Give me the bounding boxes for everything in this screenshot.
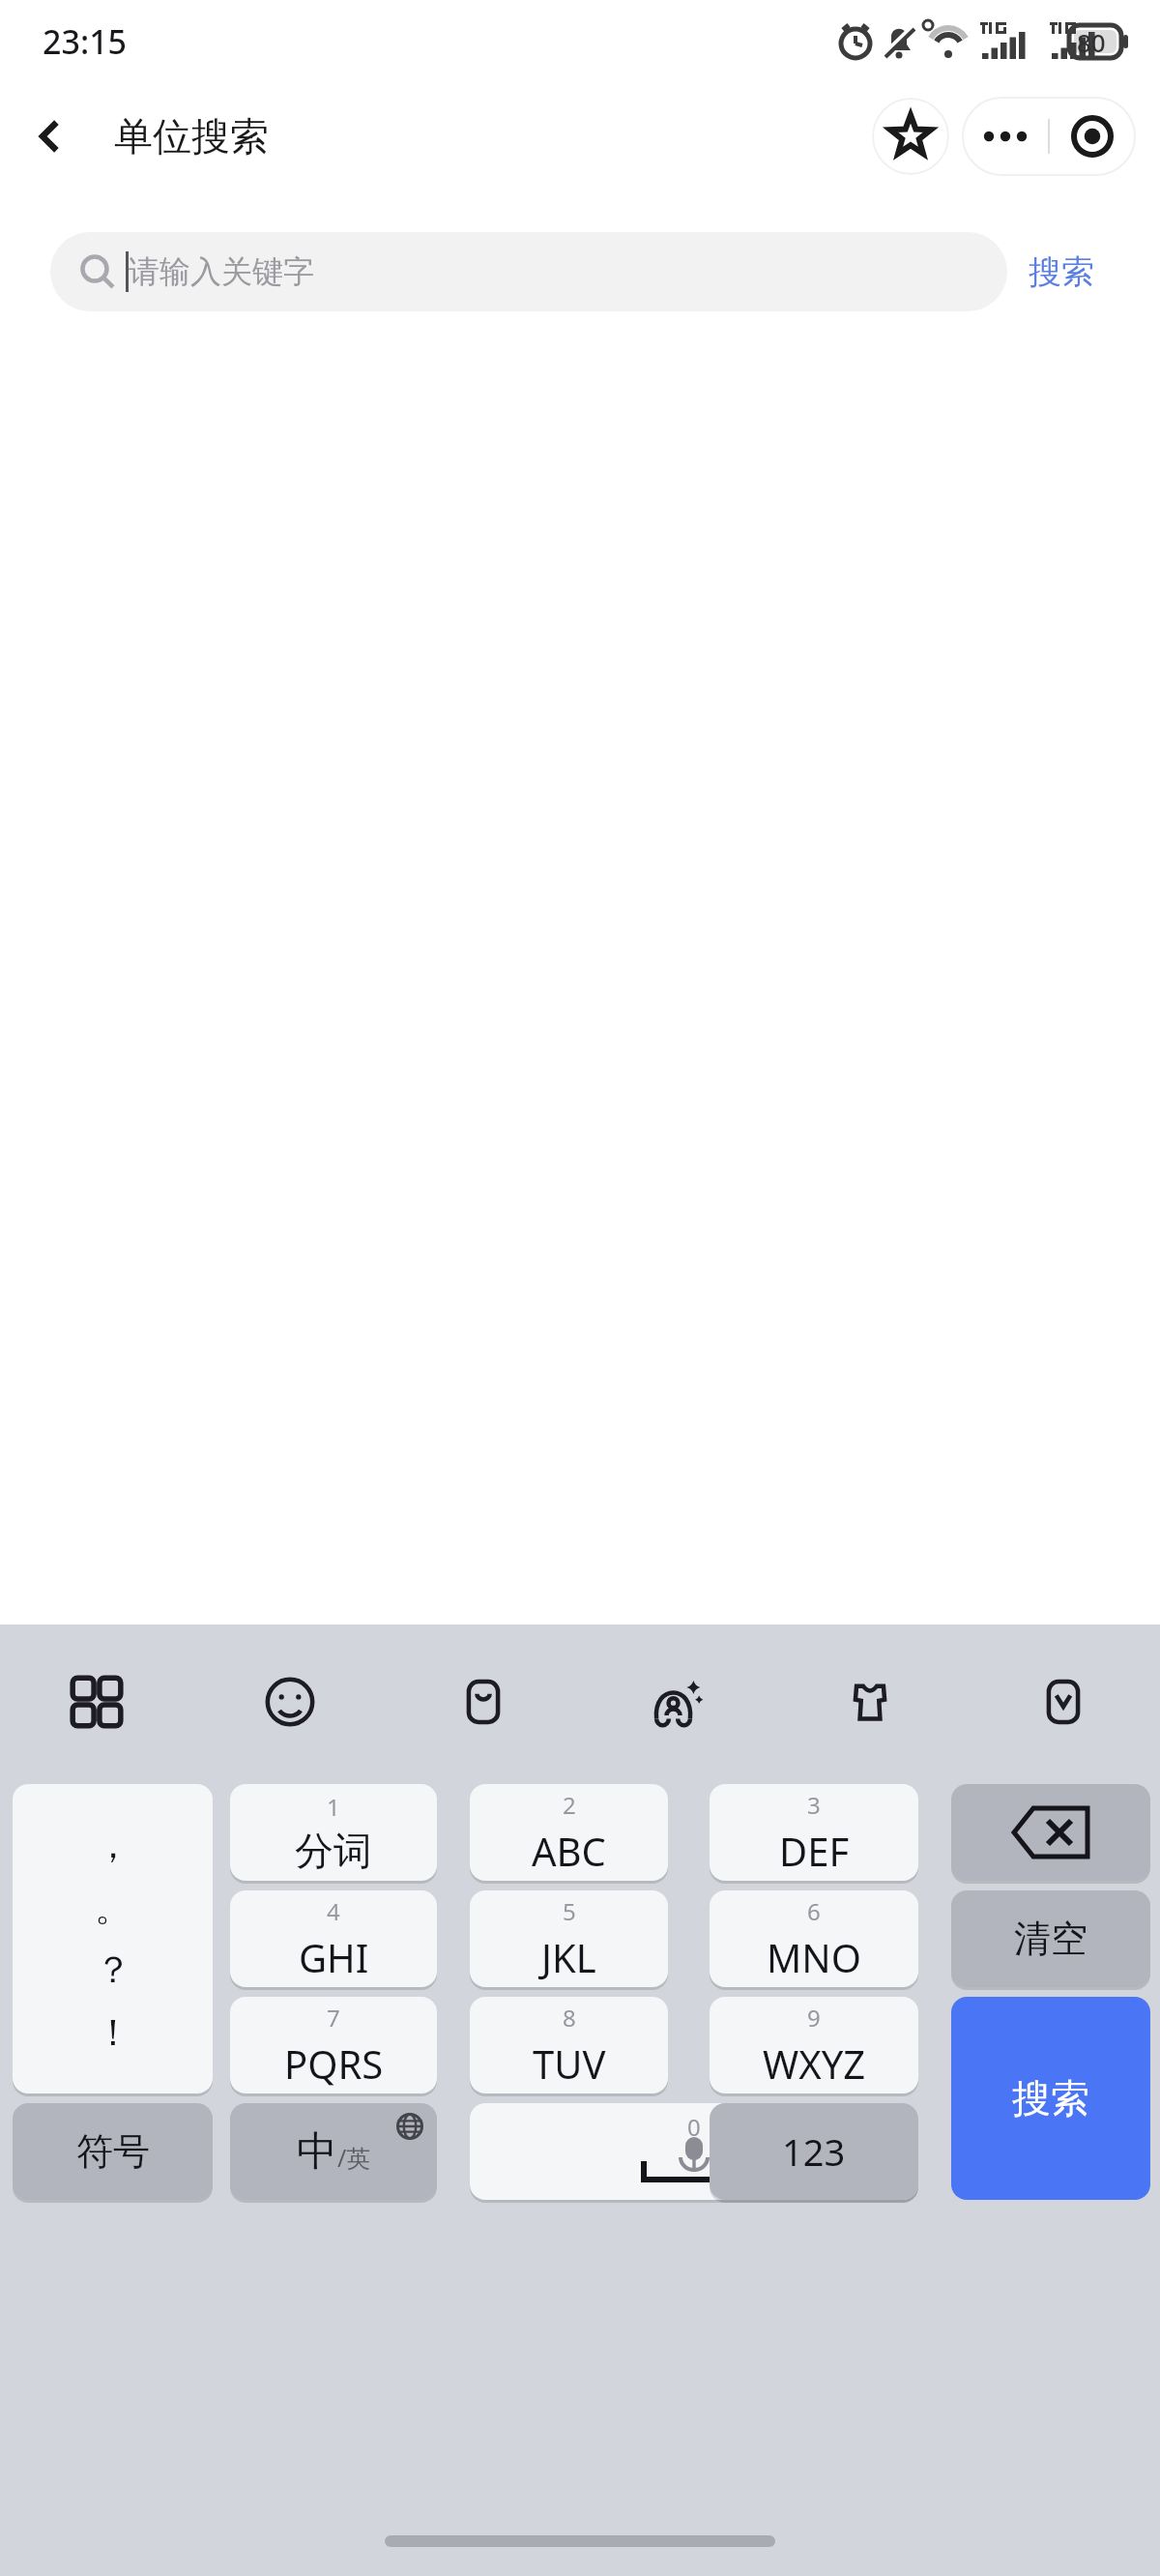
staticText: 6 xyxy=(807,1895,821,1927)
staticText: WXYZ xyxy=(763,2037,866,2090)
staticText: 请输入关键字 xyxy=(129,252,314,291)
button[interactable]: 搜索 xyxy=(951,1997,1150,2200)
button[interactable]: Hide keyboard xyxy=(967,1625,1160,1779)
button[interactable]: Keyboard layouts xyxy=(0,1625,193,1779)
button[interactable]: Space xyxy=(470,2103,918,2200)
button[interactable]: Back xyxy=(17,103,83,169)
staticText: JKL xyxy=(541,1931,596,1983)
staticText: 80 xyxy=(1077,25,1106,59)
staticText: 分词 xyxy=(295,1827,372,1875)
button[interactable]: 中英 language xyxy=(230,2103,437,2200)
staticText: 单位搜索 xyxy=(114,112,269,161)
button[interactable]: 5 JKL xyxy=(470,1890,668,1987)
staticText: ， xyxy=(95,1822,131,1868)
staticText: 搜索 xyxy=(1012,2074,1089,2122)
button[interactable]: 123 xyxy=(710,2103,918,2200)
staticText: 。 xyxy=(95,1885,131,1931)
button[interactable]: More options xyxy=(963,98,1048,175)
button[interactable]: ，。？！ punctuation xyxy=(13,1784,213,2093)
button[interactable]: 3 DEF xyxy=(710,1784,918,1881)
button[interactable]: Themes xyxy=(773,1625,967,1779)
staticText: 搜索 xyxy=(1029,251,1094,293)
staticText: ABC xyxy=(532,1825,606,1877)
staticText: 9 xyxy=(807,2002,821,2034)
staticText: 5 xyxy=(563,1895,576,1927)
button[interactable]: 符号 xyxy=(13,2103,213,2200)
staticText: 23:15 xyxy=(43,19,128,64)
staticText: 8 xyxy=(563,2002,576,2034)
staticText: PQRS xyxy=(284,2037,384,2090)
staticText: 清空 xyxy=(1014,1916,1087,1962)
staticText: 4 xyxy=(327,1895,340,1927)
staticText: 3 xyxy=(807,1789,821,1821)
staticText: /英 xyxy=(337,2141,371,2174)
button[interactable]: 6 MNO xyxy=(710,1890,918,1987)
button[interactable]: 4 GHI xyxy=(230,1890,437,1987)
button[interactable]: Emoji xyxy=(193,1625,387,1779)
staticText: 0 xyxy=(687,2111,701,2143)
staticText: 7 xyxy=(327,2002,340,2034)
staticText: ？ xyxy=(95,1947,131,1993)
button[interactable]: 搜索 xyxy=(1007,244,1116,301)
button[interactable]: Clipboard xyxy=(387,1625,580,1779)
button[interactable]: Close mini program xyxy=(1050,98,1135,175)
button[interactable]: 请输入关键字 xyxy=(50,232,1007,311)
staticText: 123 xyxy=(782,2126,846,2177)
staticText: 2 xyxy=(563,1789,576,1821)
staticText: ！ xyxy=(95,2009,131,2056)
button[interactable]: Favorite xyxy=(872,98,949,175)
staticText: 符号 xyxy=(76,2128,150,2175)
button[interactable]: 1 分词 xyxy=(230,1784,437,1881)
button[interactable]: AI assistant xyxy=(580,1625,773,1779)
button[interactable]: Backspace xyxy=(951,1784,1150,1881)
staticText: DEF xyxy=(779,1825,850,1877)
button[interactable]: 7 PQRS xyxy=(230,1997,437,2093)
button[interactable]: 8 TUV xyxy=(470,1997,668,2093)
staticText: 中 xyxy=(297,2126,337,2178)
button[interactable]: 清空 xyxy=(951,1890,1150,1987)
button[interactable]: 9 WXYZ xyxy=(710,1997,918,2093)
staticText: 1 xyxy=(327,1791,340,1823)
staticText: GHI xyxy=(299,1931,369,1983)
staticText: MNO xyxy=(767,1931,861,1983)
button[interactable]: 2 ABC xyxy=(470,1784,668,1881)
staticText: TUV xyxy=(533,2037,606,2090)
